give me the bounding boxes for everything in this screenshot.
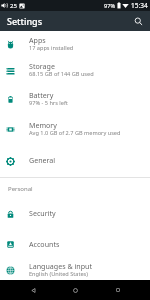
button[interactable]: Home <box>65 280 85 300</box>
staticText: 97% <box>104 2 116 10</box>
staticText: Accounts <box>29 239 60 249</box>
button[interactable]: Battery <box>0 84 150 114</box>
staticText: 68.15 GB of 144 GB used <box>29 70 94 78</box>
staticText: General <box>29 155 56 165</box>
button[interactable]: Back <box>23 280 43 300</box>
staticText: Memory <box>29 120 57 130</box>
staticText: Battery <box>29 90 54 100</box>
staticText: 17 apps installed <box>29 44 74 52</box>
staticText: Personal <box>8 185 33 193</box>
button[interactable]: Storage <box>0 57 150 84</box>
button[interactable]: Memory <box>0 114 150 145</box>
staticText: 97% - 5 hrs left <box>29 99 68 107</box>
staticText: Storage <box>29 61 55 71</box>
staticText: 15:34 <box>131 1 148 10</box>
button[interactable]: General <box>0 145 150 177</box>
staticText: Apps <box>29 35 46 45</box>
button[interactable]: Languages & input <box>0 260 150 280</box>
staticText: Settings <box>7 15 43 27</box>
button[interactable]: Security <box>0 199 150 229</box>
staticText: Security <box>29 208 56 218</box>
staticText: English (United States) <box>29 270 88 278</box>
button[interactable]: Recents <box>108 280 128 300</box>
button[interactable]: Search <box>130 13 146 29</box>
button[interactable]: Accounts <box>0 229 150 260</box>
button[interactable]: Apps <box>0 31 150 57</box>
staticText: Languages & input <box>29 261 92 271</box>
staticText: Avg 1.0 GB of 2.7 GB memory used <box>29 129 121 137</box>
staticText: 25 <box>10 2 17 10</box>
